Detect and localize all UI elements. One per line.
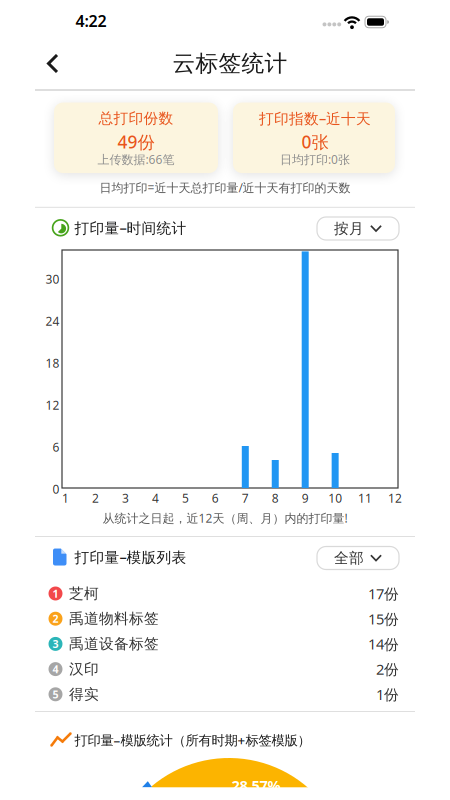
button[interactable]: Back [33,41,77,85]
staticText: 8 [272,490,279,506]
staticText: 0张 [301,130,328,153]
staticText: 17份 [368,584,399,603]
staticText: 14份 [368,634,399,654]
staticText: 5 [182,490,189,506]
staticText: 5 [52,687,58,701]
staticText: 6 [52,439,59,455]
staticText: 11 [358,490,372,506]
staticText: 2份 [376,659,399,679]
staticText: 1 [52,586,58,601]
staticText: 9 [302,490,309,506]
staticText: 全部 [334,549,364,567]
staticText: 2 [52,612,58,626]
staticText: 禹道物料标签 [69,610,159,628]
staticText: 12 [388,490,402,506]
staticText: 从统计之日起，近12天（周、月）内的打印量! [102,510,347,526]
staticText: 1份 [376,685,399,704]
staticText: 28.57% [231,776,280,795]
staticText: 打印量–模版列表 [74,547,186,567]
staticText: 打印量–时间统计 [74,218,186,238]
staticText: 按月 [334,219,364,237]
staticText: 0 [52,481,59,497]
staticText: 3 [122,490,129,506]
button[interactable]: 全部 [317,546,399,569]
staticText: 24 [45,313,59,329]
staticText: 30 [45,271,59,287]
staticText: 1 [62,490,69,506]
staticText: 3 [52,637,58,651]
staticText: 芝柯 [69,584,99,602]
staticText: 12 [45,397,59,413]
staticText: 上传数据:66笔 [97,151,174,167]
staticText: 4:22 [75,10,106,31]
staticText: 4 [152,490,159,506]
staticText: 禹道设备标签 [69,635,159,653]
staticText: 日均打印:0张 [280,151,350,167]
staticText: 日均打印=近十天总打印量/近十天有打印的天数 [99,179,350,195]
staticText: 总打印份数 [98,109,173,127]
staticText: 18 [45,355,59,371]
staticText: 4 [52,662,58,676]
staticText: 49份 [117,130,154,153]
staticText: 6 [212,490,219,506]
staticText: 打印指数–近十天 [259,109,371,128]
button[interactable]: 按月 [317,217,399,240]
staticText: 打印量–模版统计（所有时期+标签模版） [74,731,310,749]
staticText: 10 [328,490,342,506]
staticText: 2 [92,490,99,506]
staticText: 7 [242,490,249,506]
staticText: 15份 [368,609,399,628]
staticText: 得实 [69,685,99,703]
staticText: 云标签统计 [172,50,287,77]
staticText: 汉印 [69,660,99,678]
